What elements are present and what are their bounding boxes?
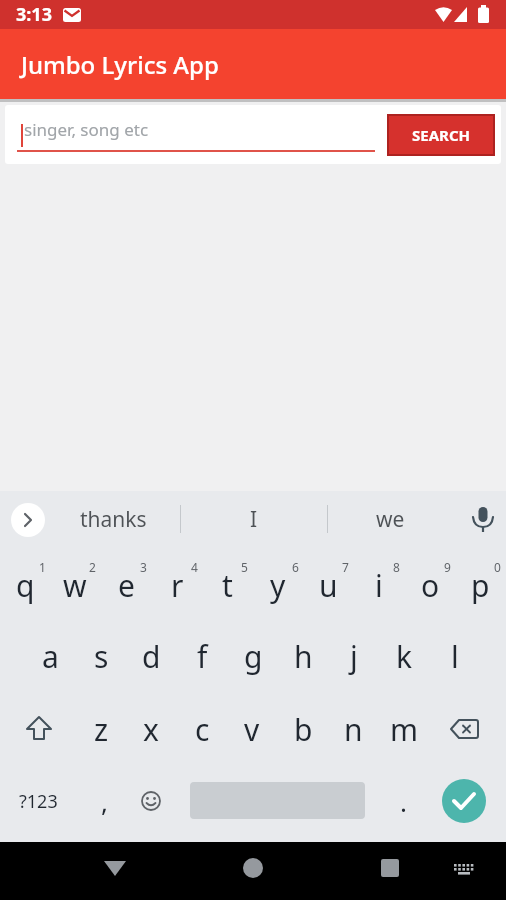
button[interactable]: , xyxy=(84,776,124,826)
staticText: 3 xyxy=(140,559,147,575)
staticText: p xyxy=(471,565,490,606)
staticText: r xyxy=(171,565,184,606)
staticText: z xyxy=(94,709,109,750)
button[interactable]: . xyxy=(385,776,421,826)
button[interactable]: c xyxy=(177,704,227,754)
staticText: t xyxy=(222,565,233,606)
staticText: , xyxy=(101,784,108,819)
staticText: 4 xyxy=(191,559,198,575)
button[interactable]: a xyxy=(25,631,75,681)
staticText: q xyxy=(16,565,35,606)
staticText: i xyxy=(375,565,383,606)
staticText: s xyxy=(94,636,109,677)
staticText: k xyxy=(396,636,413,677)
button[interactable]: q xyxy=(0,560,50,610)
button[interactable]: d xyxy=(126,631,176,681)
button[interactable]: w xyxy=(50,560,100,610)
button[interactable]: y xyxy=(253,560,303,610)
staticText: h xyxy=(294,636,313,677)
button[interactable] xyxy=(141,791,161,811)
staticText: y xyxy=(270,565,286,606)
staticText: x xyxy=(143,709,159,750)
button[interactable]: o xyxy=(405,560,455,610)
button[interactable]: x xyxy=(126,704,176,754)
staticText: . xyxy=(400,784,407,819)
staticText: 0 xyxy=(494,559,501,575)
button[interactable]: g xyxy=(228,631,278,681)
button[interactable]: t xyxy=(202,560,252,610)
button[interactable] xyxy=(11,503,45,537)
staticText: f xyxy=(197,636,208,677)
button[interactable] xyxy=(243,858,263,878)
staticText: a xyxy=(42,636,59,677)
staticText: 3:13 xyxy=(16,2,52,27)
staticText: 6 xyxy=(292,559,299,575)
button[interactable] xyxy=(381,859,399,877)
button[interactable]: i xyxy=(354,560,404,610)
button[interactable]: r xyxy=(152,560,202,610)
button[interactable] xyxy=(472,507,494,533)
staticText: thanks xyxy=(80,505,147,534)
button[interactable]: z xyxy=(76,704,126,754)
staticText: 5 xyxy=(241,559,248,575)
staticText: v xyxy=(244,709,260,750)
button[interactable]: we xyxy=(328,494,452,544)
staticText: c xyxy=(195,709,210,750)
staticText: u xyxy=(319,565,338,606)
staticText: 9 xyxy=(444,559,451,575)
staticText: SEARCH xyxy=(412,125,470,145)
staticText: I xyxy=(250,505,258,534)
staticText: we xyxy=(376,505,405,534)
button[interactable]: I xyxy=(181,494,327,544)
button[interactable]: p xyxy=(455,560,505,610)
button[interactable]: b xyxy=(278,704,328,754)
button[interactable]: f xyxy=(177,631,227,681)
button[interactable]: k xyxy=(379,631,429,681)
staticText: ?123 xyxy=(19,789,58,814)
staticText: b xyxy=(294,709,313,750)
button[interactable]: u xyxy=(303,560,353,610)
staticText: 8 xyxy=(393,559,400,575)
button[interactable] xyxy=(454,864,474,877)
staticText: singer, song etc xyxy=(24,118,149,141)
button[interactable]: m xyxy=(379,704,429,754)
staticText: o xyxy=(421,565,440,606)
button[interactable]: e xyxy=(101,560,151,610)
staticText: d xyxy=(142,636,161,677)
staticText: 1 xyxy=(39,559,46,575)
button[interactable]: thanks xyxy=(46,494,180,544)
button[interactable]: j xyxy=(329,631,379,681)
button[interactable]: ?123 xyxy=(10,776,66,826)
button[interactable]: s xyxy=(76,631,126,681)
staticText: l xyxy=(451,636,459,677)
button[interactable]: l xyxy=(430,631,480,681)
staticText: 2 xyxy=(89,559,96,575)
button[interactable] xyxy=(442,779,486,823)
staticText: g xyxy=(244,636,263,677)
button[interactable]: h xyxy=(278,631,328,681)
staticText: e xyxy=(118,565,135,606)
staticText: m xyxy=(390,709,419,750)
staticText: 7 xyxy=(342,559,349,575)
staticText: w xyxy=(63,565,87,606)
button[interactable]: v xyxy=(227,704,277,754)
button[interactable]: SEARCH xyxy=(387,114,495,156)
button[interactable]: n xyxy=(328,704,378,754)
staticText: n xyxy=(344,709,363,750)
button[interactable] xyxy=(450,719,479,739)
button[interactable] xyxy=(104,861,126,876)
staticText: Jumbo Lyrics App xyxy=(21,48,219,81)
staticText: j xyxy=(350,636,358,677)
button[interactable] xyxy=(26,717,52,741)
